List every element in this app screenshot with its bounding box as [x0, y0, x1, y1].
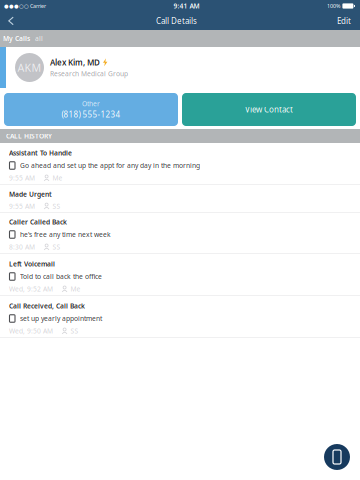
button[interactable]: Caller Called Back: [0, 212, 360, 254]
staticText: (818) 555-1234: [61, 109, 120, 120]
button[interactable]: Left Voicemail: [0, 254, 360, 296]
button[interactable]: Call Received, Call Back: [0, 296, 360, 338]
staticText: Left Voicemail: [9, 260, 55, 268]
staticText: SS: [52, 202, 60, 211]
staticText: Made Urgent: [9, 190, 52, 199]
staticText: Call Received, Call Back: [9, 302, 85, 310]
staticText: Go ahead and set up the appt for any day…: [20, 161, 200, 170]
staticText: Told to call back the office: [20, 272, 102, 281]
staticText: ●●●○○ Carrier: [4, 2, 46, 10]
staticText: Call Details: [156, 16, 197, 26]
staticText: SS: [70, 327, 78, 335]
staticText: My Calls: [3, 34, 30, 43]
staticText: 8:30 AM: [9, 243, 35, 251]
staticText: 9:55 AM: [9, 174, 35, 182]
staticText: Caller Called Back: [9, 218, 67, 226]
staticText: SS: [52, 243, 60, 251]
button[interactable]: Edit: [325, 12, 360, 30]
staticText: Other: [82, 99, 100, 108]
staticText: he's free any time next week: [20, 230, 111, 239]
staticText: CALL HISTORY: [6, 132, 52, 140]
staticText: set up yearly appointment: [20, 314, 102, 323]
staticText: 9:41 AM: [173, 2, 199, 10]
button[interactable]: Assistant To Handle: [0, 143, 360, 185]
staticText: Wed, 9:50 AM: [9, 327, 53, 335]
staticText: Research Medical Group: [50, 69, 128, 78]
staticText: AKM: [17, 60, 41, 75]
button[interactable]: Back: [0, 12, 28, 30]
staticText: Wed, 9:52 AM: [9, 285, 53, 293]
staticText: Me: [70, 285, 80, 293]
staticText: View Contact: [245, 104, 293, 115]
staticText: Assistant To Handle: [9, 149, 72, 157]
staticText: Edit: [337, 16, 351, 26]
staticText: Alex Kim, MD: [50, 57, 100, 68]
button[interactable]: Other: [4, 93, 178, 126]
button[interactable]: New call: [324, 444, 350, 470]
staticText: all: [35, 34, 43, 43]
button[interactable]: View Contact: [182, 93, 356, 126]
staticText: 9:55 AM: [9, 202, 35, 211]
staticText: 100%: [327, 2, 340, 10]
staticText: Me: [52, 174, 62, 182]
button[interactable]: Made Urgent: [0, 185, 360, 212]
